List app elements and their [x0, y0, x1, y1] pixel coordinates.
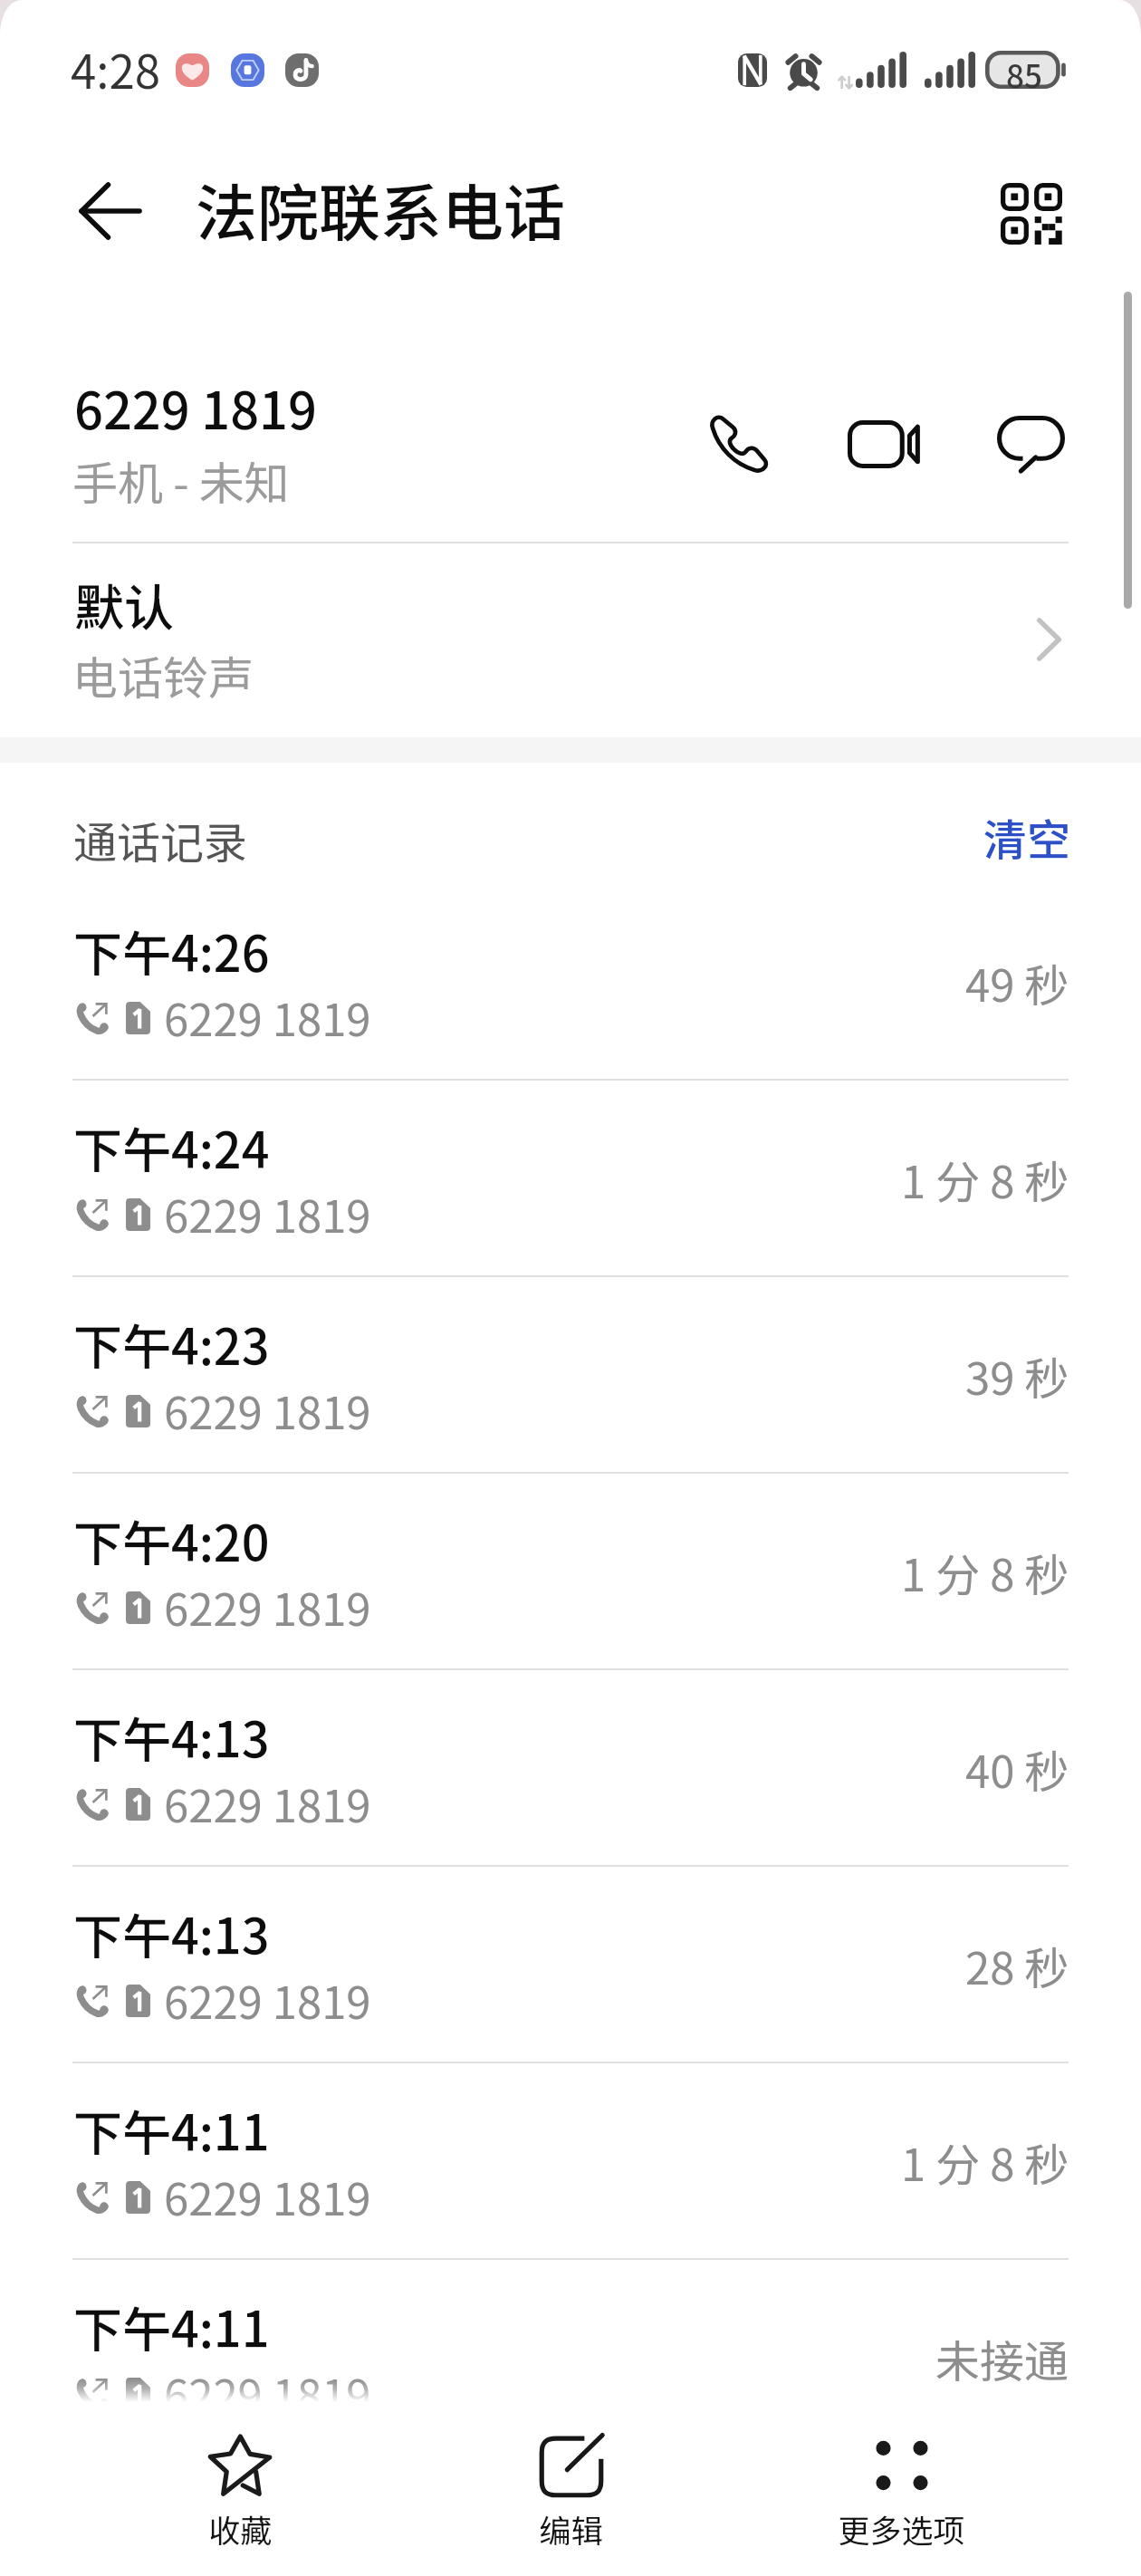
staticText: 下午4:13	[73, 1701, 270, 1772]
staticText: 6229 1819	[164, 1574, 371, 1639]
staticText: 49 秒	[965, 950, 1069, 1014]
button[interactable]: 下午4:13	[0, 1670, 1141, 1867]
button[interactable]: 更多选项	[736, 2402, 1067, 2576]
button[interactable]: 编辑	[406, 2402, 736, 2576]
button[interactable]: Scan QR code	[986, 168, 1077, 259]
button[interactable]: 下午4:20	[0, 1474, 1141, 1670]
button[interactable]: 收藏	[74, 2402, 406, 2576]
staticText: 4:28	[71, 35, 161, 102]
staticText: 6229 1819	[164, 2164, 371, 2228]
button[interactable]: 下午4:11	[0, 2063, 1141, 2260]
button[interactable]: 下午4:11	[0, 2260, 1141, 2456]
staticText: 28 秒	[965, 1933, 1069, 1997]
staticText: 收藏	[208, 2505, 273, 2552]
button[interactable]: 下午4:13	[0, 1867, 1141, 2063]
staticText: 1 分 8 秒	[901, 1147, 1069, 1211]
staticText: 未接通	[935, 2326, 1069, 2390]
staticText: 6229 1819	[164, 985, 371, 1049]
staticText: 39 秒	[965, 1343, 1069, 1408]
staticText: 下午4:23	[73, 1308, 270, 1379]
button[interactable]: 默认	[0, 543, 1141, 737]
staticText: 6229 1819	[164, 1771, 371, 1835]
staticText: 手机 - 未知	[72, 447, 290, 513]
staticText: 法院联系电话	[196, 164, 566, 253]
staticText: 通话记录	[73, 808, 248, 871]
staticText: 清空	[983, 805, 1071, 863]
staticText: 6229 1819	[164, 2360, 371, 2425]
staticText: 默认	[74, 568, 175, 640]
button[interactable]: Video call	[835, 395, 933, 493]
button[interactable]: 下午4:24	[0, 1081, 1141, 1277]
button[interactable]: 下午4:10	[0, 2456, 1141, 2576]
button[interactable]: 清空	[980, 805, 1074, 863]
staticText: 下午4:10	[73, 2487, 270, 2558]
staticText: 下午4:11	[73, 2094, 270, 2165]
staticText: 40 秒	[965, 1736, 1069, 1801]
staticText: 下午4:24	[73, 1111, 270, 1182]
button[interactable]: 下午4:23	[0, 1277, 1141, 1474]
staticText: 6229 1819	[74, 370, 317, 444]
button[interactable]: Call	[690, 395, 788, 493]
staticText: 编辑	[539, 2505, 603, 2552]
staticText: 更多选项	[838, 2505, 965, 2552]
staticText: 6229 1819	[164, 1967, 371, 2032]
staticText: 1 分 8 秒	[901, 1540, 1069, 1604]
staticText: 下午4:26	[73, 915, 270, 985]
button[interactable]: Back	[67, 168, 154, 255]
staticText: 1 分 8 秒	[901, 2129, 1069, 2194]
button[interactable]: 下午4:26	[0, 884, 1141, 1081]
staticText: 6229 1819	[164, 1378, 371, 1442]
staticText: 下午4:20	[73, 1504, 270, 1575]
staticText: 下午4:11	[73, 2291, 270, 2361]
staticText: 电话铃声	[72, 642, 254, 707]
staticText: 85	[1006, 51, 1042, 89]
button[interactable]: Message	[982, 395, 1079, 493]
staticText: 下午4:13	[73, 1898, 270, 1968]
staticText: 6229 1819	[164, 1181, 371, 1245]
